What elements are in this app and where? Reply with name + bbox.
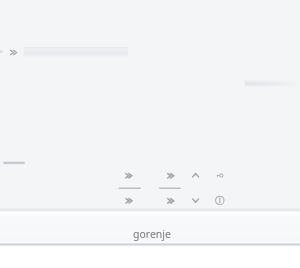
button[interactable]: Power on off (212, 193, 228, 209)
staticText: gorenje (133, 227, 171, 241)
button[interactable]: Increase right cooking zone (160, 168, 182, 184)
button[interactable]: Timer up (188, 168, 204, 182)
button[interactable]: Decrease left cooking zone (119, 192, 141, 208)
button[interactable]: Increase left cooking zone (119, 168, 141, 184)
button[interactable]: Decrease right cooking zone (160, 192, 182, 208)
button[interactable]: Child lock (212, 169, 228, 183)
button[interactable]: Timer down (188, 192, 204, 206)
